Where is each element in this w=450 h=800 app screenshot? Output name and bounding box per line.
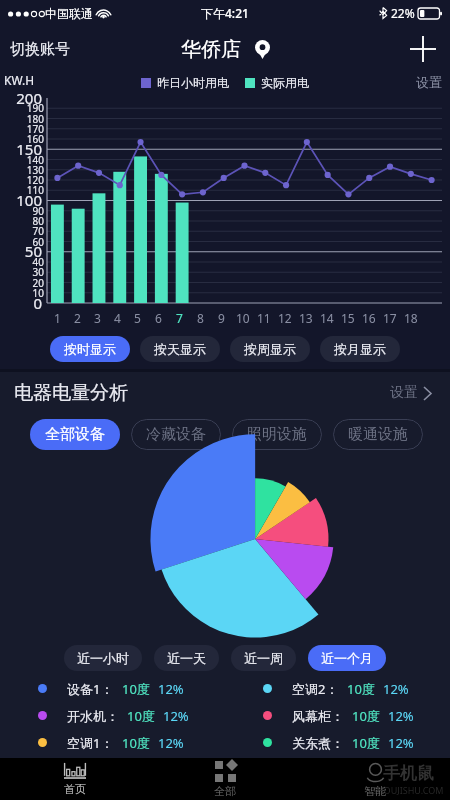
staticText: 风幕柜： (292, 708, 344, 724)
staticText: 18 (404, 310, 418, 326)
staticText: 190 (16, 101, 44, 115)
staticText: 12 (278, 310, 292, 326)
staticText: 140 (16, 153, 44, 167)
button[interactable]: 近一天 (154, 645, 219, 671)
staticText: 14 (320, 310, 334, 326)
staticText: 关东煮： (292, 735, 344, 751)
staticText: 近一周 (244, 650, 283, 666)
staticText: 1 (54, 310, 61, 326)
staticText: 近一小时 (77, 650, 129, 666)
staticText: 12% (388, 707, 414, 725)
button[interactable]: 空调2： (225, 675, 450, 702)
staticText: 空调2： (292, 680, 339, 698)
other: Smart (365, 761, 386, 782)
other: Home (64, 761, 86, 780)
staticText: 20 (16, 276, 44, 290)
staticText: 120 (16, 173, 44, 187)
staticText: 13 (299, 310, 313, 326)
staticText: 10度 (122, 680, 150, 698)
staticText: 4 (114, 310, 121, 326)
button[interactable]: 开水机： (0, 702, 225, 729)
staticText: 70 (16, 224, 44, 238)
button[interactable]: 设备1： (0, 675, 225, 702)
staticText: 200 (0, 88, 42, 108)
button[interactable]: 设置 (416, 72, 450, 90)
staticText: 开水机： (67, 708, 119, 724)
staticText: 22% (391, 5, 415, 21)
button[interactable]: 照明设施 (232, 419, 322, 450)
button[interactable]: 按月显示 (320, 336, 400, 362)
staticText: 180 (16, 112, 44, 126)
staticText: 7 (176, 310, 183, 326)
staticText: 华侨店 (181, 37, 241, 62)
button[interactable]: 切换账号 (0, 34, 80, 65)
button[interactable]: 冷藏设备 (131, 419, 221, 450)
button[interactable]: Home (0, 758, 150, 800)
staticText: 2 (74, 310, 81, 326)
staticText: 空调1： (67, 734, 114, 752)
button[interactable]: 近一周 (231, 645, 296, 671)
staticText: 实际用电 (261, 75, 309, 90)
staticText: 冷藏设备 (146, 425, 206, 444)
button[interactable]: Smart (300, 758, 450, 800)
button[interactable]: 空调1： (0, 729, 225, 756)
staticText: 设置 (416, 74, 442, 90)
staticText: 6 (155, 310, 162, 326)
staticText: 中国联通 (45, 6, 93, 21)
button[interactable]: 风幕柜： (225, 702, 450, 729)
staticText: 100 (0, 190, 42, 210)
button[interactable]: 近一小时 (64, 645, 142, 671)
staticText: 80 (16, 214, 44, 228)
staticText: 160 (16, 132, 44, 146)
button[interactable]: 按天显示 (140, 336, 220, 362)
staticText: 10度 (347, 680, 375, 698)
staticText: 10度 (122, 734, 150, 752)
staticText: 暖通设施 (348, 425, 408, 444)
staticText: 智能 (364, 784, 386, 798)
staticText: 17 (383, 310, 397, 326)
staticText: 110 (16, 183, 44, 197)
staticText: 按时显示 (64, 341, 116, 357)
staticText: 0 (0, 293, 42, 313)
staticText: 12% (163, 707, 189, 725)
staticText: 50 (0, 241, 42, 261)
staticText: 15 (341, 310, 355, 326)
staticText: 按月显示 (334, 341, 386, 357)
staticText: 全部设备 (45, 425, 105, 444)
staticText: 按天显示 (154, 341, 206, 357)
button[interactable]: 近一个月 (308, 645, 386, 671)
staticText: 昨日小时用电 (157, 75, 229, 90)
button[interactable]: Add (396, 28, 450, 70)
button[interactable]: 关东煮： (225, 729, 450, 756)
staticText: 近一天 (167, 650, 206, 666)
staticText: 9 (218, 310, 225, 326)
staticText: 130 (16, 163, 44, 177)
staticText: 10度 (352, 734, 380, 752)
staticText: 90 (16, 204, 44, 218)
staticText: 150 (0, 139, 42, 159)
staticText: 10度 (352, 707, 380, 725)
button[interactable]: All (150, 758, 300, 800)
staticText: 12% (158, 680, 184, 698)
staticText: 近一个月 (321, 650, 373, 666)
button[interactable]: 华侨店 (173, 33, 278, 66)
button[interactable]: 按时显示 (50, 336, 130, 362)
staticText: 11 (257, 310, 271, 326)
staticText: 设置 (390, 384, 418, 402)
staticText: 下午4:21 (201, 5, 249, 21)
button[interactable]: 按周显示 (230, 336, 310, 362)
staticText: 首页 (64, 782, 86, 796)
staticText: 3 (94, 310, 101, 326)
staticText: 10度 (127, 707, 155, 725)
staticText: 按周显示 (244, 341, 296, 357)
staticText: 40 (16, 255, 44, 269)
staticText: 8 (197, 310, 204, 326)
staticText: 设备1： (67, 680, 114, 698)
staticText: 电器电量分析 (14, 381, 128, 405)
staticText: 16 (362, 310, 376, 326)
button[interactable]: 设置 (386, 380, 436, 406)
button[interactable]: 暖通设施 (333, 419, 423, 450)
button[interactable]: 全部设备 (30, 419, 120, 450)
staticText: 12% (388, 734, 414, 752)
staticText: 12% (383, 680, 409, 698)
